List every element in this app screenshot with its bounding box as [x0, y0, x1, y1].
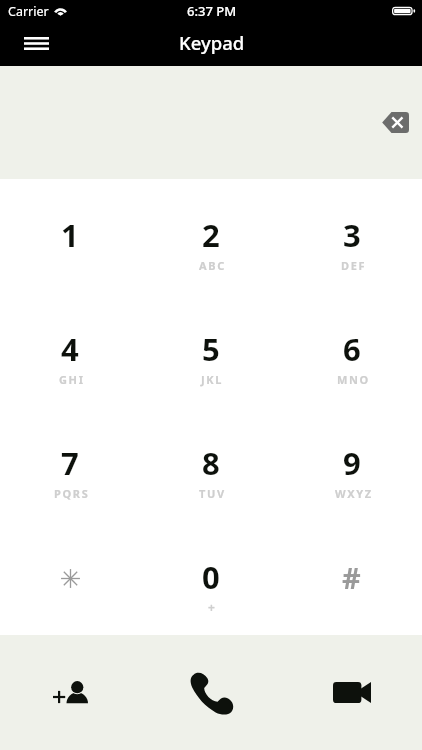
staticText: JKL	[201, 372, 224, 387]
button[interactable]: 6	[281, 293, 422, 407]
staticText: GHI	[59, 372, 85, 387]
button[interactable]: 5	[140, 293, 281, 407]
staticText: 4	[61, 328, 79, 370]
staticText: TUV	[199, 486, 226, 501]
staticText: 9	[343, 442, 361, 484]
staticText: 2	[202, 214, 220, 256]
staticText: 6	[343, 328, 361, 370]
staticText: 5	[202, 328, 220, 370]
staticText: Keypad	[179, 30, 245, 55]
button[interactable]: Video call	[281, 635, 422, 750]
button[interactable]: Add contact	[0, 635, 140, 750]
button[interactable]: 9	[281, 407, 422, 521]
staticText: #	[342, 558, 361, 597]
staticText: WXYZ	[335, 486, 373, 501]
button[interactable]: 8	[140, 407, 281, 521]
staticText: ABC	[199, 258, 226, 273]
staticText: Carrier	[8, 3, 49, 20]
button[interactable]: 1	[0, 179, 140, 293]
staticText: MNO	[337, 372, 370, 387]
button[interactable]	[0, 521, 140, 635]
button[interactable]: 0	[140, 521, 281, 635]
button[interactable]: Backspace	[373, 100, 417, 144]
staticText: 6:37 PM	[187, 2, 237, 20]
staticText: 7	[61, 442, 79, 484]
staticText: 8	[202, 442, 220, 484]
button[interactable]: Menu	[12, 26, 60, 60]
button[interactable]: 3	[281, 179, 422, 293]
button[interactable]: Call	[140, 635, 281, 750]
staticText: 1	[61, 214, 79, 256]
staticText: 3	[343, 214, 361, 256]
staticText: DEF	[341, 258, 367, 273]
button[interactable]: 7	[0, 407, 140, 521]
button[interactable]: 4	[0, 293, 140, 407]
button[interactable]: #	[281, 521, 422, 635]
staticText: PQRS	[54, 486, 90, 501]
staticText: 0	[202, 556, 220, 598]
staticText: +	[208, 599, 215, 615]
button[interactable]: 2	[140, 179, 281, 293]
